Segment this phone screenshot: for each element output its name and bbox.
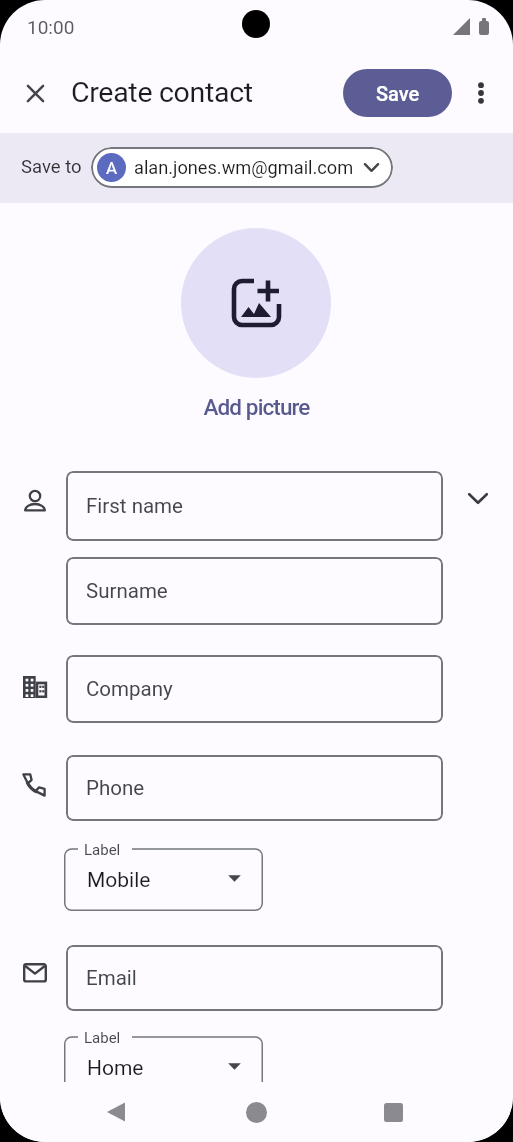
staticText: A (106, 158, 118, 178)
staticText: Mobile (87, 868, 151, 893)
staticText: alan.jones.wm@gmail.com (134, 157, 354, 178)
button[interactable]: Phone (66, 755, 443, 821)
staticText: Email (86, 966, 137, 990)
staticText: First name (86, 494, 183, 518)
staticText: Company (86, 677, 173, 701)
button[interactable]: A (91, 147, 393, 188)
staticText: Home (87, 1056, 144, 1081)
staticText: Save (376, 82, 420, 105)
staticText: Surname (86, 579, 168, 603)
button[interactable]: Surname (66, 557, 443, 625)
staticText: Label (84, 841, 121, 859)
button[interactable] (458, 69, 503, 117)
staticText: 10:00 (27, 16, 75, 38)
staticText: Create contact (71, 76, 253, 109)
button[interactable] (96, 1092, 136, 1132)
button[interactable] (236, 1092, 276, 1132)
button[interactable]: Company (66, 655, 443, 723)
button[interactable] (11, 69, 59, 117)
button[interactable]: Add picture (0, 394, 513, 420)
button[interactable]: Mobile (64, 841, 263, 911)
button[interactable] (181, 228, 331, 378)
button[interactable]: Email (66, 945, 443, 1011)
staticText: Label (84, 1029, 121, 1047)
button[interactable] (373, 1092, 413, 1132)
button[interactable]: Save (343, 69, 452, 117)
button[interactable]: Home (64, 1029, 263, 1082)
button[interactable]: First name (66, 471, 443, 541)
staticText: Phone (86, 776, 145, 800)
staticText: Save to (21, 156, 82, 178)
button[interactable] (456, 476, 500, 520)
